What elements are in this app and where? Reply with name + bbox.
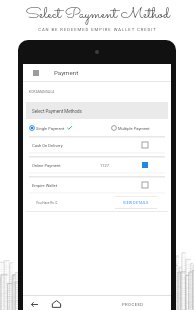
staticText: 1127 <box>100 163 109 168</box>
staticText: Payment <box>54 69 79 76</box>
button[interactable]: PROCEED <box>95 296 171 310</box>
staticText: Select Payment Methods <box>32 109 82 114</box>
staticText: Select Payment Method <box>25 2 170 27</box>
staticText: Empire Wallet <box>32 183 58 188</box>
staticText: Cash On Delivery <box>32 143 63 148</box>
button[interactable]: Online Payment <box>26 158 168 172</box>
button[interactable]: Multiple Payment <box>111 125 150 131</box>
staticText: Online Payment <box>32 163 61 168</box>
button[interactable]: Empire Wallet <box>26 178 168 192</box>
staticText: PROCEED <box>122 302 144 307</box>
staticText: VIEW DETAILS <box>123 201 149 205</box>
button[interactable]: Cash On Delivery <box>26 138 168 152</box>
staticText: Single Payment <box>36 126 65 131</box>
button[interactable]: VIEW DETAILS <box>115 196 157 209</box>
staticText: You Have Rs. 0 <box>36 201 58 205</box>
button[interactable]: Menu <box>23 64 48 81</box>
staticText: Multiple Payment <box>118 126 150 131</box>
staticText: KORAMANGALA <box>29 90 55 94</box>
staticText: CAN BE REDEEMED EMPIRE WALLET CREDIT <box>38 27 157 32</box>
button[interactable]: Back <box>23 296 45 310</box>
button[interactable]: Home <box>45 296 67 310</box>
button[interactable]: Single Payment <box>29 125 72 131</box>
